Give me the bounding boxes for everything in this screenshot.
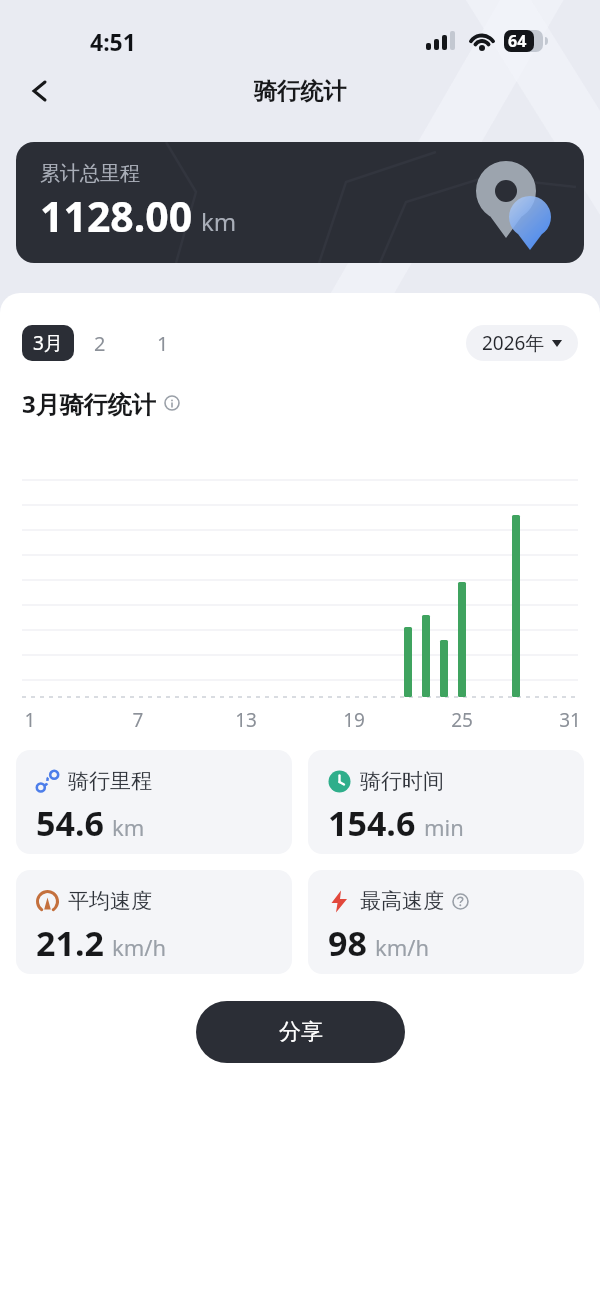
- staticText: 31: [555, 707, 585, 731]
- button[interactable]: 2: [74, 330, 126, 357]
- staticText: 1128.00: [40, 188, 193, 244]
- staticText: 骑行统计: [254, 77, 346, 106]
- button[interactable]: 分享: [196, 1001, 405, 1063]
- staticText: 25: [447, 707, 477, 731]
- button[interactable]: 平均速度: [16, 870, 292, 974]
- staticText: km: [112, 812, 145, 842]
- button[interactable]: 骑行里程: [16, 750, 292, 854]
- button[interactable]: 1: [137, 330, 189, 357]
- staticText: km/h: [375, 932, 430, 962]
- staticText: 98: [328, 920, 367, 966]
- staticText: 3月骑行统计: [22, 387, 156, 420]
- staticText: 13: [231, 707, 261, 731]
- staticText: 64: [508, 30, 527, 52]
- staticText: 54.6: [36, 800, 104, 846]
- button[interactable]: 2026年: [466, 325, 578, 361]
- staticText: 3月: [33, 330, 63, 356]
- staticText: 2: [94, 330, 106, 357]
- button[interactable]: 累计总里程: [16, 142, 584, 263]
- staticText: km/h: [112, 932, 167, 962]
- staticText: 21.2: [36, 920, 104, 966]
- staticText: 7: [123, 707, 153, 731]
- button[interactable]: 3月: [22, 325, 74, 361]
- staticText: 分享: [279, 1018, 323, 1046]
- staticText: 骑行里程: [68, 768, 152, 794]
- button[interactable]: 最高速度: [308, 870, 584, 974]
- staticText: min: [424, 812, 464, 842]
- staticText: 平均速度: [68, 888, 152, 914]
- staticText: 累计总里程: [40, 161, 140, 186]
- staticText: 154.6: [328, 800, 416, 846]
- staticText: 1: [157, 330, 169, 357]
- staticText: 骑行时间: [360, 768, 444, 794]
- button[interactable]: [30, 81, 50, 101]
- staticText: 2026年: [482, 330, 545, 356]
- staticText: 最高速度: [360, 888, 444, 914]
- button[interactable]: 骑行时间: [308, 750, 584, 854]
- staticText: 19: [339, 707, 369, 731]
- staticText: 4:51: [90, 26, 136, 57]
- staticText: 1: [15, 707, 45, 731]
- staticText: km: [201, 205, 237, 238]
